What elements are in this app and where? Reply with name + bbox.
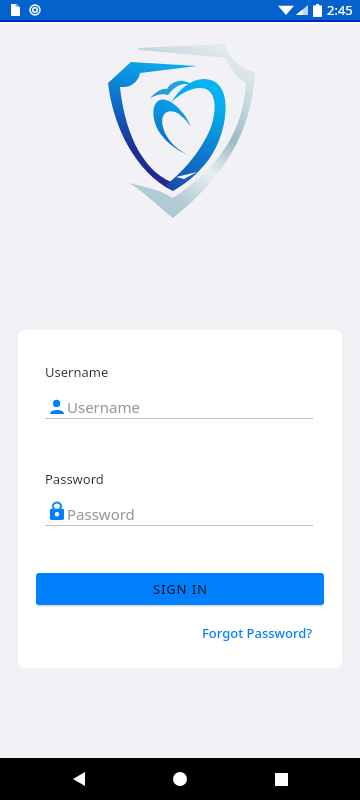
button[interactable]: Recents bbox=[259, 758, 303, 800]
button[interactable]: SIGN IN bbox=[36, 573, 324, 605]
button[interactable]: Password bbox=[45, 503, 313, 526]
staticText: Username bbox=[45, 363, 109, 381]
button[interactable]: Back bbox=[57, 758, 101, 800]
button[interactable]: Home bbox=[158, 758, 202, 800]
button[interactable]: Username bbox=[45, 396, 313, 419]
staticText: 2:45 bbox=[327, 1, 353, 19]
button[interactable]: Forgot Password? bbox=[202, 624, 313, 642]
staticText: Username bbox=[67, 397, 140, 417]
staticText: Password bbox=[67, 504, 135, 524]
staticText: Password bbox=[45, 470, 104, 488]
staticText: SIGN IN bbox=[153, 580, 208, 598]
